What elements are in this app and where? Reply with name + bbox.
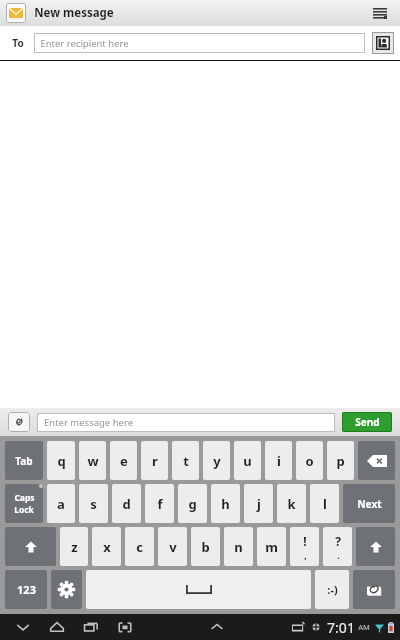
staticText: a: [57, 495, 65, 513]
staticText: Send: [355, 415, 380, 429]
button[interactable]: f: [145, 484, 174, 523]
button[interactable]: e: [110, 441, 137, 480]
staticText: u: [243, 452, 252, 470]
staticText: v: [169, 538, 177, 556]
button[interactable]: Keyboard settings: [51, 570, 82, 609]
button[interactable]: Shift: [5, 527, 56, 566]
button[interactable]: y: [203, 441, 230, 480]
button[interactable]: Pick contact: [372, 32, 394, 54]
staticText: j: [257, 495, 261, 513]
button[interactable]: l: [310, 484, 339, 523]
button[interactable]: g: [178, 484, 207, 523]
button[interactable]: z: [60, 527, 88, 566]
staticText: o: [305, 452, 314, 470]
staticText: w: [87, 452, 99, 470]
button[interactable]: More options: [368, 1, 392, 25]
button[interactable]: o: [296, 441, 323, 480]
staticText: s: [90, 495, 97, 513]
button[interactable]: t: [172, 441, 199, 480]
staticText: :-): [327, 582, 338, 597]
staticText: b: [201, 538, 210, 556]
staticText: 7:01: [327, 618, 355, 637]
staticText: c: [136, 538, 143, 556]
button[interactable]: q: [47, 441, 75, 480]
button[interactable]: j: [244, 484, 273, 523]
button[interactable]: b: [191, 527, 220, 566]
button[interactable]: c: [125, 527, 154, 566]
staticText: ?: [335, 533, 341, 549]
button[interactable]: :-): [315, 570, 349, 609]
staticText: Next: [357, 497, 382, 511]
button[interactable]: k: [277, 484, 306, 523]
staticText: d: [122, 495, 131, 513]
staticText: m: [265, 538, 278, 556]
button[interactable]: Shift: [356, 527, 395, 566]
button[interactable]: v: [158, 527, 187, 566]
staticText: i: [277, 452, 281, 470]
button[interactable]: Space: [86, 570, 311, 609]
button[interactable]: n: [224, 527, 253, 566]
button[interactable]: Attach: [8, 412, 30, 432]
button[interactable]: Screenshot: [108, 614, 142, 640]
button[interactable]: Enter recipient here: [34, 33, 365, 53]
staticText: New message: [34, 5, 114, 21]
button[interactable]: 123: [5, 570, 47, 609]
staticText: e: [120, 452, 128, 470]
staticText: z: [71, 538, 78, 556]
staticText: 123: [17, 582, 36, 597]
staticText: l: [323, 495, 327, 513]
button[interactable]: a: [47, 484, 75, 523]
staticText: k: [287, 495, 296, 513]
button[interactable]: i: [265, 441, 292, 480]
button[interactable]: Next: [343, 484, 395, 523]
staticText: To: [12, 36, 24, 50]
staticText: t: [183, 452, 189, 470]
staticText: q: [57, 452, 66, 470]
staticText: f: [157, 495, 163, 513]
button[interactable]: Home: [40, 614, 74, 640]
staticText: y: [213, 452, 221, 470]
button[interactable]: Attach: [353, 570, 395, 609]
button[interactable]: x: [92, 527, 121, 566]
button[interactable]: d: [112, 484, 141, 523]
staticText: AM: [358, 622, 370, 632]
staticText: Enter recipient here: [40, 37, 129, 50]
button[interactable]: ?: [323, 527, 352, 566]
staticText: .: [337, 549, 340, 561]
button[interactable]: Tab: [5, 441, 43, 480]
staticText: h: [221, 495, 230, 513]
staticText: ,: [304, 549, 307, 561]
staticText: Lock: [14, 504, 34, 516]
staticText: Caps: [14, 492, 35, 504]
staticText: Enter message here: [44, 416, 133, 429]
button[interactable]: Hide keyboard: [6, 614, 40, 640]
staticText: r: [152, 452, 158, 470]
staticText: p: [336, 452, 345, 470]
button[interactable]: !: [290, 527, 319, 566]
staticText: !: [303, 533, 307, 549]
button[interactable]: m: [257, 527, 286, 566]
button[interactable]: s: [79, 484, 108, 523]
button[interactable]: Caps: [5, 484, 43, 523]
button[interactable]: r: [141, 441, 168, 480]
button[interactable]: w: [79, 441, 106, 480]
staticText: n: [234, 538, 243, 556]
staticText: g: [188, 495, 197, 513]
button[interactable]: Recents: [74, 614, 108, 640]
staticText: x: [103, 538, 111, 556]
button[interactable]: Messaging: [6, 3, 26, 23]
button[interactable]: h: [211, 484, 240, 523]
button[interactable]: Backspace: [358, 441, 395, 480]
button[interactable]: Enter message here: [37, 413, 335, 432]
button[interactable]: p: [327, 441, 354, 480]
button[interactable]: Send: [342, 412, 392, 432]
staticText: Tab: [15, 454, 33, 468]
button[interactable]: u: [234, 441, 261, 480]
